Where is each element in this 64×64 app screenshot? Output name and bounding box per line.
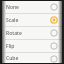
other: Select Cube <box>50 55 58 63</box>
staticText: Scale <box>6 17 50 24</box>
other: Select None <box>50 3 58 11</box>
other: Select Scale <box>50 16 58 24</box>
staticText: Flip <box>6 43 50 50</box>
staticText: Cube <box>6 55 50 62</box>
staticText: None <box>6 4 50 11</box>
other: Select Flip <box>50 42 58 50</box>
staticText: Rotate <box>6 30 50 37</box>
button[interactable]: Flip <box>2 40 62 52</box>
button[interactable]: None <box>2 1 62 13</box>
button[interactable]: Cube <box>2 53 62 64</box>
other: Select Rotate <box>50 29 58 37</box>
button[interactable]: Scale <box>2 14 62 26</box>
button[interactable]: Rotate <box>2 27 62 39</box>
